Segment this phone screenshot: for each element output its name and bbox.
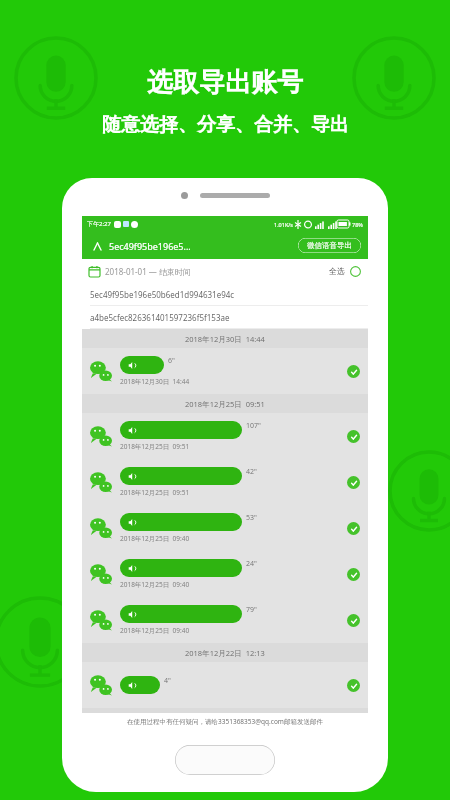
- staticText: 42": [246, 467, 257, 477]
- staticText: 微信语音导出: [307, 241, 352, 250]
- staticText: 全选: [329, 266, 345, 276]
- button[interactable]: Selected: [347, 679, 360, 692]
- staticText: 下午2:27: [87, 220, 111, 228]
- staticText: 1.01K/s: [274, 221, 293, 228]
- staticText: 2018年12月25日 09:40: [120, 626, 190, 635]
- button[interactable]: 4": [90, 662, 360, 708]
- button[interactable]: Selected: [347, 614, 360, 627]
- button[interactable]: Selected: [347, 365, 360, 378]
- staticText: 78%: [352, 221, 363, 228]
- staticText: 2018年12月25日 09:51: [120, 442, 190, 451]
- staticText: 2018年12月30日 14:44: [120, 377, 190, 386]
- staticText: 2018-01-01 — 结束时间: [105, 266, 191, 277]
- staticText: 24": [246, 559, 257, 569]
- button[interactable]: Selected: [347, 476, 360, 489]
- staticText: 107": [246, 421, 261, 431]
- button[interactable]: 6": [90, 348, 360, 394]
- button[interactable]: 42": [90, 459, 360, 505]
- staticText: 53": [246, 513, 257, 523]
- staticText: 2018年12月25日 09:51: [120, 488, 190, 497]
- staticText: 2018年12月25日 09:51: [185, 399, 265, 409]
- staticText: 选取导出账号: [147, 66, 303, 99]
- button[interactable]: 53": [90, 505, 360, 551]
- button[interactable]: 79": [90, 597, 360, 643]
- staticText: a4be5cfec826361401597236f5f153ae: [90, 312, 230, 323]
- button[interactable]: Selected: [347, 568, 360, 581]
- staticText: 4": [164, 676, 171, 686]
- button[interactable]: Back: [89, 238, 105, 254]
- staticText: 5ec49f95be196e50b6ed1d994631e94c: [90, 289, 235, 300]
- staticText: 79": [246, 605, 257, 615]
- button[interactable]: 微信语音导出: [298, 238, 361, 253]
- staticText: 2018年12月25日 09:40: [120, 534, 190, 543]
- button[interactable]: Selected: [347, 430, 360, 443]
- staticText: 5ec49f95be196e5...: [109, 240, 191, 252]
- button[interactable]: 2018-01-01 — 结束时间: [89, 259, 361, 283]
- button[interactable]: 107": [90, 413, 360, 459]
- button[interactable]: Home: [175, 745, 275, 775]
- staticText: 在使用过程中有任何疑问，请给3351368353@qq.com邮箱发送邮件: [127, 717, 323, 726]
- staticText: 2018年12月25日 09:40: [120, 580, 190, 589]
- button[interactable]: 24": [90, 551, 360, 597]
- button[interactable]: a4be5cfec826361401597236f5f153ae: [90, 306, 368, 329]
- button[interactable]: Selected: [347, 522, 360, 535]
- staticText: 2018年12月22日 12:13: [185, 648, 265, 658]
- staticText: 2018年12月30日 14:44: [185, 334, 265, 344]
- staticText: 6": [168, 356, 175, 366]
- staticText: 随意选择、分享、合并、导出: [102, 113, 349, 137]
- button[interactable]: 5ec49f95be196e50b6ed1d994631e94c: [90, 283, 368, 306]
